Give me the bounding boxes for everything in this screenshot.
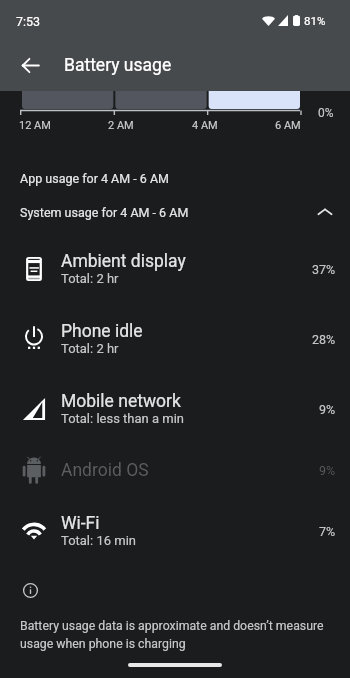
staticText: 28%: [312, 332, 336, 347]
staticText: Mobile network: [61, 391, 181, 412]
button[interactable]: System usage for 4 AM - 6 AM: [0, 195, 350, 229]
staticText: Total: 16 min: [61, 533, 136, 548]
staticText: Wi-Fi: [61, 513, 100, 534]
staticText: Phone idle: [61, 321, 143, 342]
staticText: Android OS: [61, 460, 149, 481]
staticText: 81%: [304, 14, 326, 27]
button[interactable]: Phone idle: [0, 304, 350, 374]
button[interactable]: Android OS: [0, 444, 350, 496]
staticText: 12 AM: [19, 119, 51, 132]
staticText: 9%: [319, 463, 336, 478]
button[interactable]: Back: [10, 45, 50, 85]
staticText: 0%: [318, 106, 334, 120]
staticText: 6 AM: [275, 119, 301, 132]
button[interactable]: Mobile network: [0, 374, 350, 444]
staticText: Total: less than a min: [61, 411, 185, 426]
staticText: 37%: [312, 262, 336, 277]
staticText: 7:53: [16, 14, 41, 29]
staticText: Total: 2 hr: [61, 271, 119, 286]
staticText: 2 AM: [108, 119, 134, 132]
staticText: 9%: [319, 402, 336, 417]
staticText: Ambient display: [61, 251, 186, 272]
staticText: 4 AM: [192, 119, 218, 132]
staticText: Battery usage data is approximate and do…: [20, 619, 328, 651]
staticText: Total: 2 hr: [61, 341, 119, 356]
staticText: 7%: [319, 524, 336, 539]
button[interactable]: Ambient display: [0, 234, 350, 304]
button[interactable]: App usage for 4 AM - 6 AM: [0, 161, 350, 195]
button[interactable]: Wi-Fi: [0, 496, 350, 566]
staticText: Battery usage: [64, 55, 172, 76]
staticText: App usage for 4 AM - 6 AM: [20, 171, 170, 186]
staticText: System usage for 4 AM - 6 AM: [20, 205, 189, 220]
